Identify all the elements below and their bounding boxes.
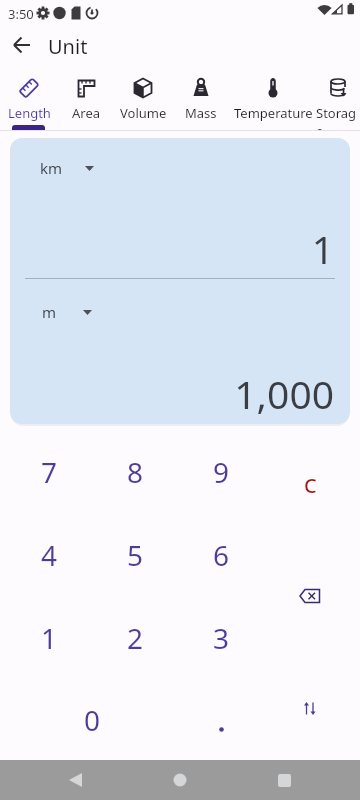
button[interactable]: m <box>42 302 92 322</box>
button[interactable] <box>178 680 264 760</box>
staticText: Volume <box>120 104 167 122</box>
button[interactable]: 7 <box>6 432 92 512</box>
button[interactable]: 3 <box>178 598 264 678</box>
staticText: 8 <box>127 453 144 491</box>
staticText: Temperature <box>234 104 313 122</box>
button[interactable]: 9 <box>178 432 264 512</box>
button[interactable]: 6 <box>178 515 264 595</box>
staticText: 1,000 <box>10 367 334 420</box>
button[interactable] <box>164 764 196 796</box>
staticText: 7 <box>41 453 58 491</box>
button[interactable] <box>59 764 91 796</box>
button[interactable] <box>6 30 38 62</box>
button[interactable]: Length <box>0 66 58 130</box>
staticText: Length <box>8 104 51 122</box>
button[interactable]: 0 <box>6 680 178 760</box>
button[interactable] <box>267 668 353 748</box>
button[interactable]: 8 <box>92 432 178 512</box>
staticText: 1 <box>41 619 58 657</box>
button[interactable]: Storage <box>316 66 360 130</box>
staticText: km <box>40 158 63 178</box>
button[interactable]: km <box>40 158 94 178</box>
button[interactable] <box>268 764 300 796</box>
button[interactable]: 2 <box>92 598 178 678</box>
staticText: 0 <box>84 701 101 739</box>
button[interactable]: C <box>267 445 353 525</box>
staticText: 1 <box>10 222 334 275</box>
staticText: Area <box>72 104 101 122</box>
staticText: 4 <box>41 536 58 574</box>
button[interactable]: Temperature <box>230 66 316 130</box>
staticText: m <box>42 302 57 322</box>
staticText: 9 <box>213 453 230 491</box>
staticText: Unit <box>48 33 88 60</box>
button[interactable]: Volume <box>114 66 172 130</box>
button[interactable]: 1 <box>6 598 92 678</box>
staticText: 5 <box>127 536 144 574</box>
button[interactable]: Area <box>58 66 114 130</box>
staticText: 3 <box>213 619 230 657</box>
staticText: C <box>304 472 317 499</box>
staticText: Mass <box>185 104 217 122</box>
button[interactable]: 5 <box>92 515 178 595</box>
staticText: 3:50 <box>8 5 34 23</box>
button[interactable]: 4 <box>6 515 92 595</box>
staticText: 6 <box>213 536 230 574</box>
staticText: 2 <box>127 619 144 657</box>
button[interactable]: Mass <box>172 66 230 130</box>
staticText: Storage <box>316 104 360 130</box>
button[interactable] <box>267 556 353 636</box>
